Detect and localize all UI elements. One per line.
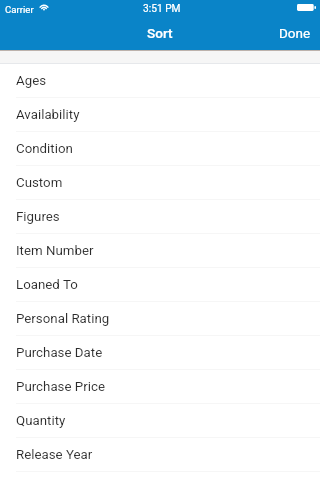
button[interactable]: Loaned To (0, 268, 320, 302)
staticText: Quantity (16, 413, 66, 429)
other: Wi-Fi (39, 4, 49, 11)
button[interactable]: Purchase Date (0, 336, 320, 370)
staticText: Done (279, 25, 311, 41)
button[interactable]: Personal Rating (0, 302, 320, 336)
button[interactable]: Purchase Price (0, 370, 320, 404)
staticText: Ages (16, 73, 47, 89)
staticText: Availability (16, 107, 80, 123)
staticText: Release Year (16, 447, 93, 463)
staticText: Item Number (16, 243, 94, 259)
button[interactable]: Done (270, 20, 320, 46)
staticText: 3:51 PM (143, 3, 181, 15)
staticText: Personal Rating (16, 311, 110, 327)
button[interactable]: Ages (0, 64, 320, 98)
staticText: Condition (16, 141, 73, 157)
staticText: Custom (16, 175, 63, 191)
button[interactable]: Release Year (0, 438, 320, 472)
staticText: Purchase Price (16, 379, 105, 395)
button[interactable]: Availability (0, 98, 320, 132)
button[interactable]: Figures (0, 200, 320, 234)
staticText: Purchase Date (16, 345, 103, 361)
button[interactable]: Item Number (0, 234, 320, 268)
button[interactable]: Condition (0, 132, 320, 166)
button[interactable]: Quantity (0, 404, 320, 438)
other: Battery full (297, 4, 316, 11)
staticText: Loaned To (16, 277, 78, 293)
staticText: Figures (16, 209, 60, 225)
button[interactable]: Custom (0, 166, 320, 200)
staticText: Carrier (5, 4, 34, 15)
staticText: Sort (147, 25, 173, 41)
